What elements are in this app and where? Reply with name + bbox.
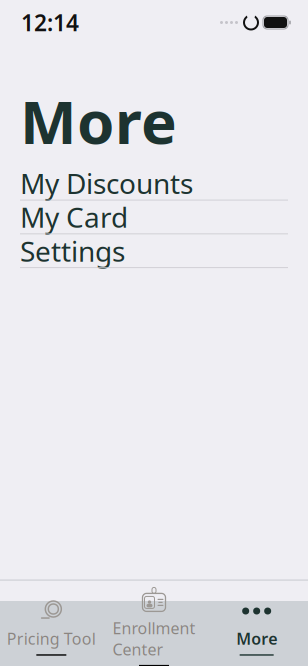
staticText: More	[20, 81, 177, 161]
button[interactable]: Enrollment Center	[103, 588, 205, 666]
staticText: My Discounts	[20, 165, 193, 202]
button[interactable]: More	[205, 599, 308, 656]
staticText: Pricing Tool	[7, 628, 96, 649]
button[interactable]: Settings	[20, 234, 288, 268]
staticText: 12:14	[21, 7, 79, 37]
staticText: Settings	[20, 232, 125, 269]
staticText: My Card	[20, 198, 128, 236]
button[interactable]: My Card	[20, 200, 288, 234]
button[interactable]: Pricing Tool	[0, 599, 103, 656]
button[interactable]: My Discounts	[20, 167, 288, 200]
staticText: More	[236, 628, 277, 649]
staticText: Enrollment Center	[112, 617, 195, 660]
